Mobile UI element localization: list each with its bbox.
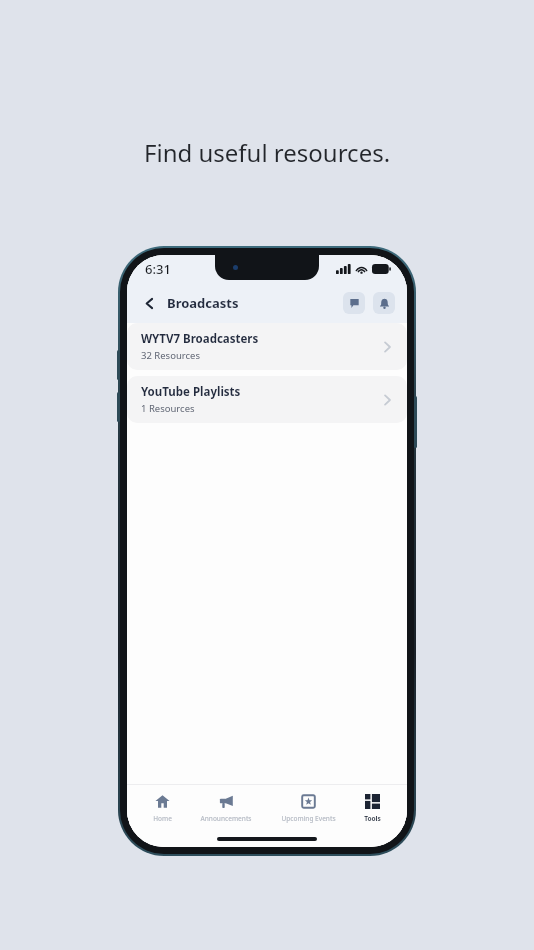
button[interactable]: Announcements (198, 794, 254, 823)
button[interactable]: Tools (362, 794, 383, 823)
staticText: 6:31 (145, 260, 171, 278)
staticText: Broadcasts (167, 294, 239, 312)
button[interactable]: Upcoming Events (279, 794, 338, 823)
staticText: Upcoming Events (281, 814, 336, 823)
staticText: Home (153, 814, 172, 823)
button[interactable]: Home (151, 794, 174, 823)
staticText: 1 Resources (141, 402, 195, 415)
staticText: Tools (364, 814, 381, 823)
staticText: Find useful resources. (144, 136, 391, 169)
button[interactable]: WYTV7 Broadcasters (127, 323, 407, 370)
staticText: 32 Resources (141, 349, 200, 362)
button[interactable]: Back (135, 289, 163, 317)
button[interactable]: Notifications (373, 292, 395, 314)
button[interactable]: Messages (343, 292, 365, 314)
staticText: WYTV7 Broadcasters (141, 331, 259, 347)
button[interactable]: YouTube Playlists (127, 376, 407, 423)
staticText: Announcements (200, 814, 252, 823)
staticText: YouTube Playlists (141, 384, 241, 400)
